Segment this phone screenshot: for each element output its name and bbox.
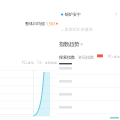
- button[interactable]: 搜索指数: [59, 55, 75, 60]
- staticText: PC+移动: [108, 55, 120, 59]
- staticText: +: [61, 27, 63, 32]
- button[interactable]: +: [61, 27, 117, 32]
- staticText: 锅炉安宁: [65, 12, 81, 17]
- staticText: PC+移动、7天、全部领域: [22, 61, 57, 65]
- button[interactable]: 锅炉安宁: [61, 12, 117, 17]
- staticText: 搜索指数: [59, 55, 75, 60]
- staticText: 1,563: [46, 21, 55, 26]
- staticText: 7: [115, 12, 117, 17]
- staticText: 添加对比关键词: [64, 27, 92, 32]
- staticText: 指数趋势: [59, 41, 79, 48]
- staticText: 整体日均值: [25, 21, 45, 26]
- staticText: 资讯指数: [78, 55, 94, 60]
- button[interactable]: 资讯指数: [78, 55, 94, 60]
